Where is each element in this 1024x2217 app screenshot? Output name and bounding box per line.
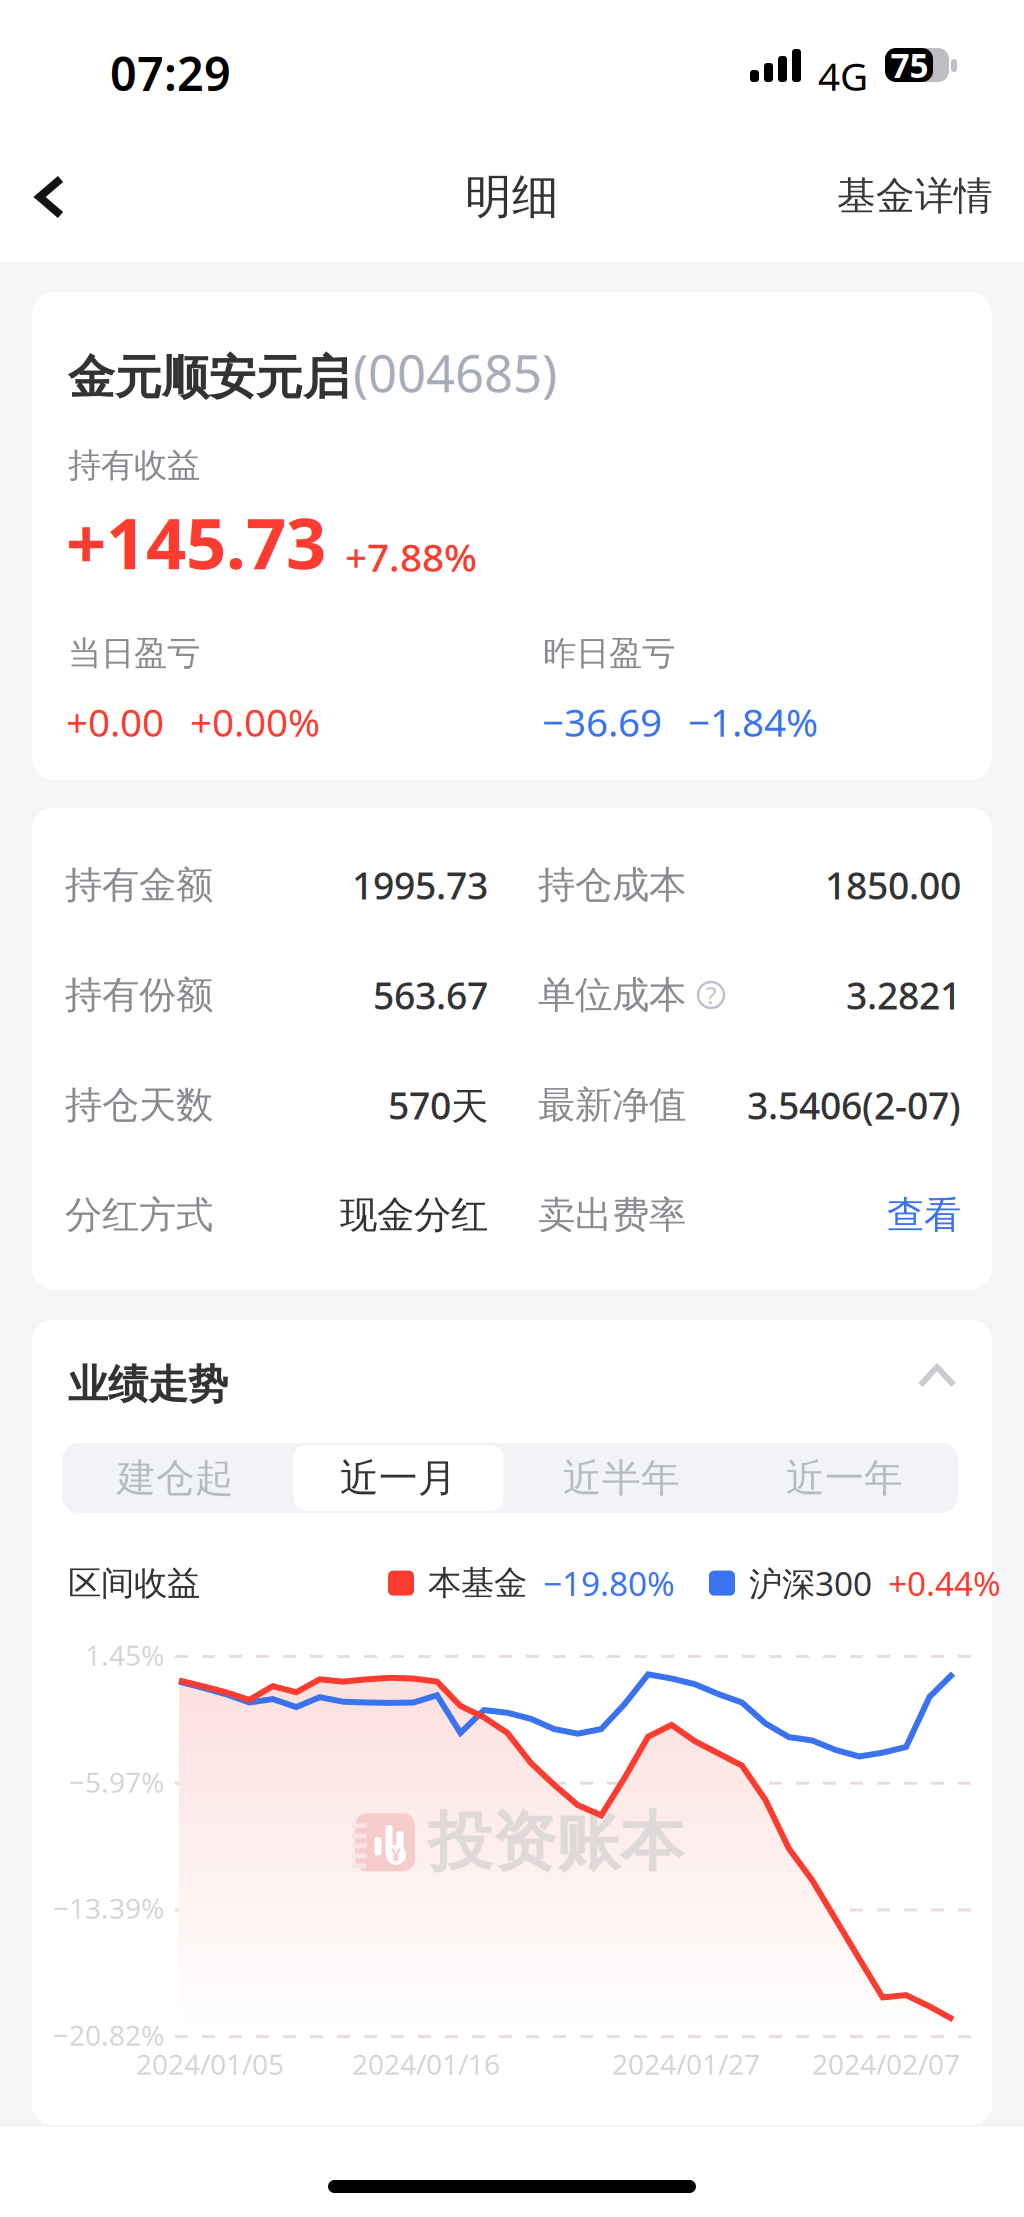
staticText: 563.67 [373,970,488,1020]
button[interactable]: Back [0,142,100,252]
staticText: 昨日盈亏 [543,633,675,674]
staticText: 持有份额 [65,972,213,1018]
button[interactable]: 近一月 [287,1445,510,1511]
staticText: +7.88% [345,531,477,582]
staticText: +0.44% [888,1561,1001,1605]
staticText: 570天 [388,1080,488,1130]
staticText: 4G [818,50,868,101]
staticText: 建仓起 [117,1454,234,1502]
staticText: +145.73 [66,495,326,589]
staticText: ¥ [391,1843,401,1866]
staticText: 2024/01/27 [612,2045,760,2083]
staticText: 本基金 [428,1563,527,1604]
staticText: +0.00% [190,696,320,747]
staticText: 基金详情 [837,172,993,220]
staticText: 金元顺安元启 [68,349,350,406]
button[interactable]: Collapse [894,1333,980,1419]
staticText: −5.97% [69,1763,164,1801]
staticText: −13.39% [53,1889,164,1927]
staticText: −1.84% [688,696,818,747]
staticText: 2024/01/16 [352,2045,500,2083]
staticText: 查看 [887,1192,961,1238]
staticText: −19.80% [543,1561,675,1605]
staticText: 投资账本 [428,1803,684,1882]
staticText: −36.69 [542,696,662,747]
staticText: 持有收益 [68,445,200,486]
staticText: 单位成本 [538,972,686,1018]
staticText: (004685) [353,339,557,406]
staticText: 2024/02/07 [812,2045,960,2083]
button[interactable]: 近一年 [733,1445,956,1511]
staticText: 近一月 [340,1454,457,1502]
button[interactable]: 近半年 [510,1445,733,1511]
staticText: 当日盈亏 [68,633,200,674]
staticText: 业绩走势 [68,1360,228,1409]
staticText: ? [706,979,716,1011]
staticText: 1.45% [85,1636,164,1674]
staticText: 1995.73 [352,860,488,910]
button[interactable]: 基金详情 [815,141,1015,251]
staticText: 明细 [465,168,559,226]
staticText: 持仓成本 [538,862,686,908]
staticText: 3.2821 [846,970,961,1020]
staticText: 近半年 [563,1454,680,1502]
staticText: 75 [890,43,928,87]
staticText: 3.5406(2-07) [747,1080,961,1130]
staticText: 近一年 [786,1454,903,1502]
staticText: 1850.00 [825,860,961,910]
staticText: 沪深300 [749,1561,872,1605]
staticText: 2024/01/05 [136,2045,284,2083]
staticText: 卖出费率 [538,1192,686,1238]
staticText: 持仓天数 [65,1082,213,1128]
staticText: −20.82% [53,2016,164,2054]
staticText: 区间收益 [68,1563,200,1604]
staticText: 07:29 [110,42,231,104]
staticText: 最新净值 [538,1082,686,1128]
staticText: 持有金额 [65,862,213,908]
button[interactable]: 建仓起 [64,1445,287,1511]
staticText: +0.00 [66,696,164,747]
staticText: 现金分红 [340,1192,488,1238]
staticText: 分红方式 [65,1192,213,1238]
